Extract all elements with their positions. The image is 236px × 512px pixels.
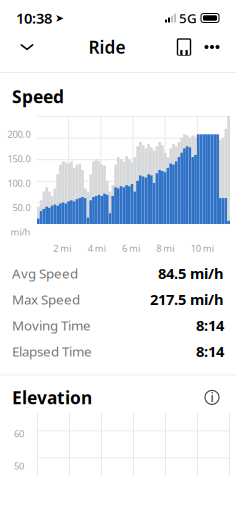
staticText: mi/h <box>10 226 30 238</box>
staticText: 6 mi <box>122 242 140 254</box>
button[interactable]: Max Speed <box>0 286 236 312</box>
button[interactable]: Avg Speed <box>0 260 236 286</box>
staticText: 50 <box>14 460 24 472</box>
staticText: Max Speed <box>12 291 80 308</box>
button[interactable]: Close <box>10 30 44 64</box>
staticText: 84.5 mi/h <box>158 264 224 283</box>
button[interactable]: Elevation info <box>200 385 224 409</box>
button[interactable]: Elapsed Time <box>0 338 236 364</box>
staticText: 10 mi <box>191 242 214 254</box>
staticText: 60 <box>14 427 24 440</box>
staticText: Ride <box>88 35 125 58</box>
staticText: 200.0 <box>7 128 30 140</box>
staticText: 150.0 <box>7 152 30 165</box>
staticText: Moving Time <box>12 317 91 334</box>
staticText: ➤ <box>55 12 64 24</box>
staticText: 5G <box>179 9 197 27</box>
button[interactable]: More options <box>198 30 226 64</box>
staticText: 2 mi <box>53 242 71 254</box>
button[interactable]: Moving Time <box>0 312 236 338</box>
staticText: 8 mi <box>156 242 174 254</box>
staticText: 217.5 mi/h <box>150 290 224 309</box>
staticText: 10:38 <box>16 8 52 28</box>
button[interactable]: Bookmark <box>170 30 198 64</box>
staticText: 100.0 <box>7 177 30 189</box>
staticText: 4 mi <box>88 242 106 254</box>
staticText: Elapsed Time <box>12 343 92 360</box>
staticText: 8:14 <box>196 342 224 361</box>
staticText: Elevation <box>12 386 92 409</box>
staticText: Speed <box>12 85 64 108</box>
staticText: 50.0 <box>12 201 30 214</box>
staticText: i <box>210 389 213 405</box>
staticText: 8:14 <box>196 316 224 335</box>
staticText: Avg Speed <box>12 265 78 282</box>
